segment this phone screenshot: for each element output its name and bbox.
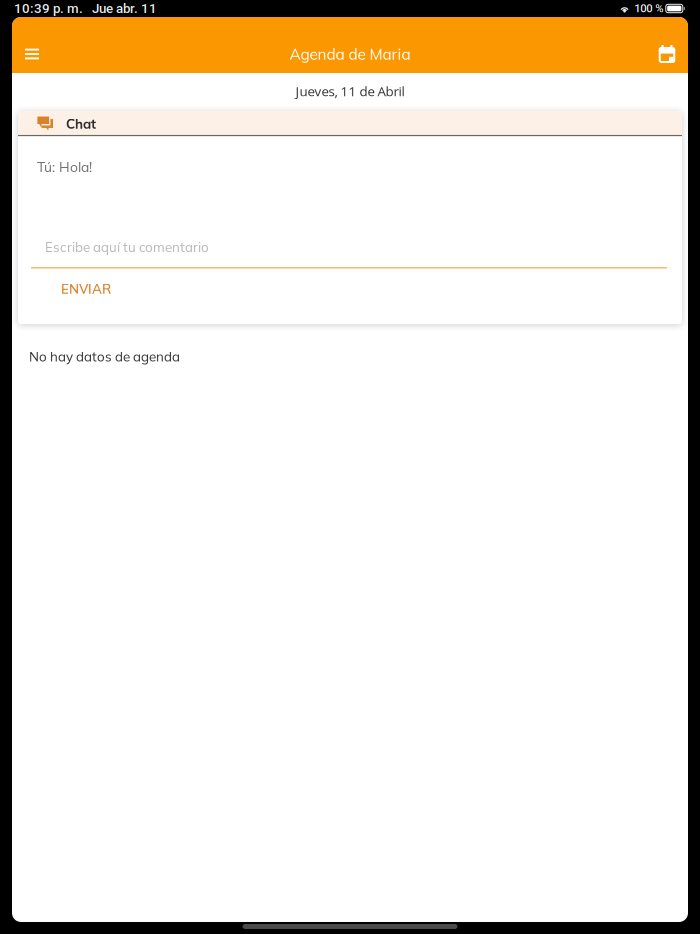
button[interactable]: Calendar [646,35,688,73]
staticText: Tú: Hola! [37,158,92,176]
staticText: Jueves, 11 de Abril [295,82,404,100]
staticText: 100 % [634,2,663,15]
staticText: Jue abr. 11 [92,1,157,16]
button[interactable]: ENVIAR [18,268,133,311]
staticText: Agenda de Maria [289,44,410,64]
staticText: Chat [66,115,96,132]
staticText: 10:39 p. m. [14,1,83,16]
button[interactable]: Menu [11,35,53,73]
staticText: ENVIAR [61,280,111,297]
staticText: No hay datos de agenda [29,348,180,365]
staticText: Escribe aquí tu comentario [45,239,209,255]
